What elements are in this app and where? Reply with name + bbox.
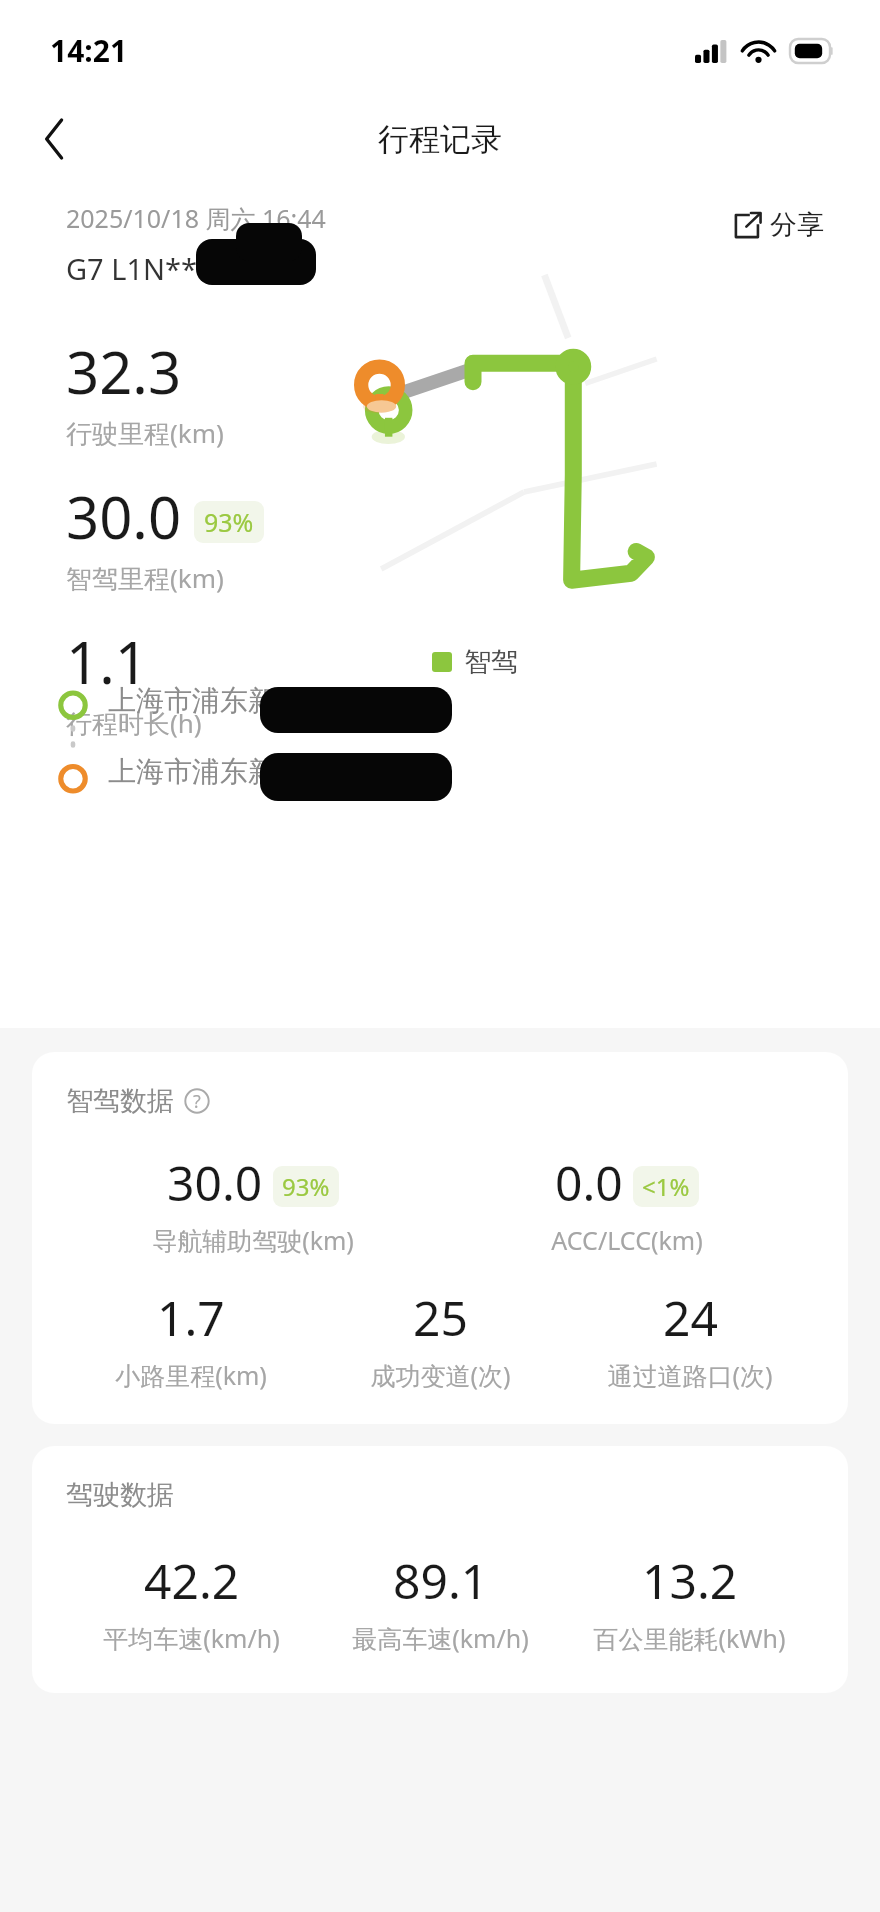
staticText: 1.1	[66, 622, 148, 701]
staticText: 25	[413, 1285, 468, 1350]
staticText: 行程时长(h)	[66, 705, 202, 741]
staticText: 行程记录	[378, 120, 502, 159]
staticText: 89.1	[393, 1548, 489, 1613]
staticText: 1.7	[157, 1285, 225, 1350]
staticText: 导航辅助驾驶(km)	[152, 1223, 354, 1257]
staticText: 93%	[204, 505, 254, 539]
button[interactable]: Back	[22, 106, 88, 172]
staticText: 平均车速(km/h)	[103, 1621, 280, 1655]
staticText: 24	[663, 1285, 718, 1350]
staticText: 驾驶数据	[66, 1478, 174, 1512]
staticText: 上海市浦东新区	[108, 754, 304, 789]
staticText: 百公里能耗(kWh)	[593, 1621, 786, 1655]
staticText: 小路里程(km)	[115, 1358, 267, 1392]
staticText: 智驾	[464, 645, 518, 679]
staticText: 上海市浦东新区	[108, 683, 304, 718]
staticText: 30.0	[167, 1150, 263, 1215]
staticText: 智驾里程(km)	[66, 560, 224, 596]
staticText: 32.3	[66, 332, 182, 411]
button[interactable]: 分享	[707, 195, 850, 255]
staticText: 分享	[770, 208, 824, 242]
staticText: 最高车速(km/h)	[352, 1621, 529, 1655]
staticText: 通过道路口(次)	[607, 1358, 773, 1392]
staticText: <1%	[642, 1170, 690, 1203]
staticText: 93%	[282, 1170, 330, 1203]
staticText: ACC/LCC(km)	[551, 1223, 703, 1257]
staticText: 13.2	[642, 1548, 738, 1613]
staticText: 0.0	[555, 1150, 623, 1215]
staticText: 智驾数据	[66, 1084, 174, 1118]
staticText: 行驶里程(km)	[66, 415, 224, 451]
button[interactable]: Help	[182, 1086, 212, 1116]
staticText: 14:21	[50, 30, 128, 71]
staticText: 30.0	[66, 477, 182, 556]
staticText: ?	[193, 1089, 201, 1114]
staticText: 成功变道(次)	[370, 1358, 511, 1392]
staticText: G7 L1N****	[66, 249, 229, 288]
staticText: 2025/10/18 周六 16:44	[66, 201, 326, 235]
staticText: 42.2	[144, 1548, 240, 1613]
